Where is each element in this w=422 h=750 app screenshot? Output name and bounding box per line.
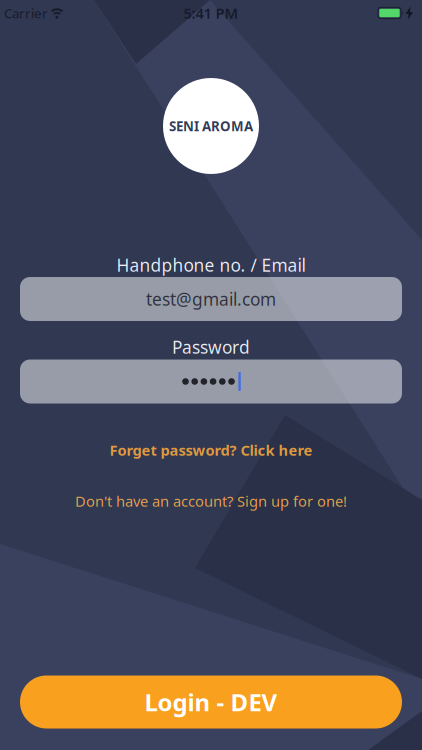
button[interactable]: Forget password? Click here — [109, 440, 312, 460]
staticText: Handphone no. / Email — [116, 253, 305, 276]
button[interactable]: Don't have an account? Sign up for one! — [75, 491, 347, 511]
staticText: Login - DEV — [144, 686, 277, 718]
staticText: Carrier — [4, 4, 48, 22]
button[interactable]: Login - DEV — [20, 675, 402, 728]
staticText: Forget password? Click here — [109, 440, 312, 460]
staticText: SENI AROMA — [169, 117, 253, 135]
staticText: Don't have an account? Sign up for one! — [75, 491, 347, 511]
staticText: 5:41 PM — [183, 3, 238, 23]
staticText: test@gmail.com — [146, 287, 276, 310]
staticText: Password — [172, 335, 250, 358]
